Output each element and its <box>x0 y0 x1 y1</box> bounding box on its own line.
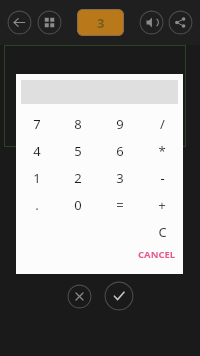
button[interactable]: CANCEL <box>138 245 176 263</box>
button[interactable]: = <box>99 191 141 218</box>
staticText: - <box>160 169 165 187</box>
staticText: 6 <box>116 142 124 160</box>
staticText: . <box>35 196 39 214</box>
button[interactable]: 9 <box>99 110 141 137</box>
button[interactable]: Apps grid <box>37 10 62 35</box>
button[interactable]: 5 <box>57 137 99 164</box>
button[interactable]: + <box>141 191 183 218</box>
button[interactable]: 3 <box>99 164 141 191</box>
staticText: 3 <box>116 169 124 187</box>
button[interactable]: 2 <box>57 164 99 191</box>
button[interactable]: - <box>141 164 183 191</box>
staticText: 7 <box>33 115 41 133</box>
button[interactable]: 4 <box>16 137 57 164</box>
button[interactable]: 1 <box>16 164 57 191</box>
button[interactable]: C <box>141 218 183 245</box>
staticText: + <box>158 196 166 214</box>
staticText: = <box>116 196 124 214</box>
button[interactable]: 8 <box>57 110 99 137</box>
button[interactable]: . <box>16 191 57 218</box>
button[interactable]: 6 <box>99 137 141 164</box>
staticText: 5 <box>74 142 82 160</box>
staticText: 0 <box>74 196 82 214</box>
button[interactable]: Cancel <box>67 284 92 309</box>
button[interactable]: 0 <box>57 191 99 218</box>
staticText: 8 <box>74 115 82 133</box>
staticText: 9 <box>116 115 124 133</box>
button[interactable]: 7 <box>16 110 57 137</box>
staticText: CANCEL <box>138 248 176 261</box>
staticText: * <box>158 142 166 160</box>
staticText: 3 <box>97 14 105 32</box>
staticText: 2 <box>74 169 82 187</box>
staticText: 4 <box>33 142 41 160</box>
button[interactable]: Volume <box>139 10 164 35</box>
button[interactable]: Confirm <box>104 281 134 311</box>
staticText: C <box>158 223 167 241</box>
button[interactable]: * <box>141 137 183 164</box>
button[interactable]: Back <box>7 10 32 35</box>
button[interactable]: 3 <box>77 9 124 36</box>
staticText: / <box>160 115 165 133</box>
button[interactable]: Share <box>168 10 193 35</box>
staticText: 1 <box>33 169 41 187</box>
button[interactable]: / <box>141 110 183 137</box>
